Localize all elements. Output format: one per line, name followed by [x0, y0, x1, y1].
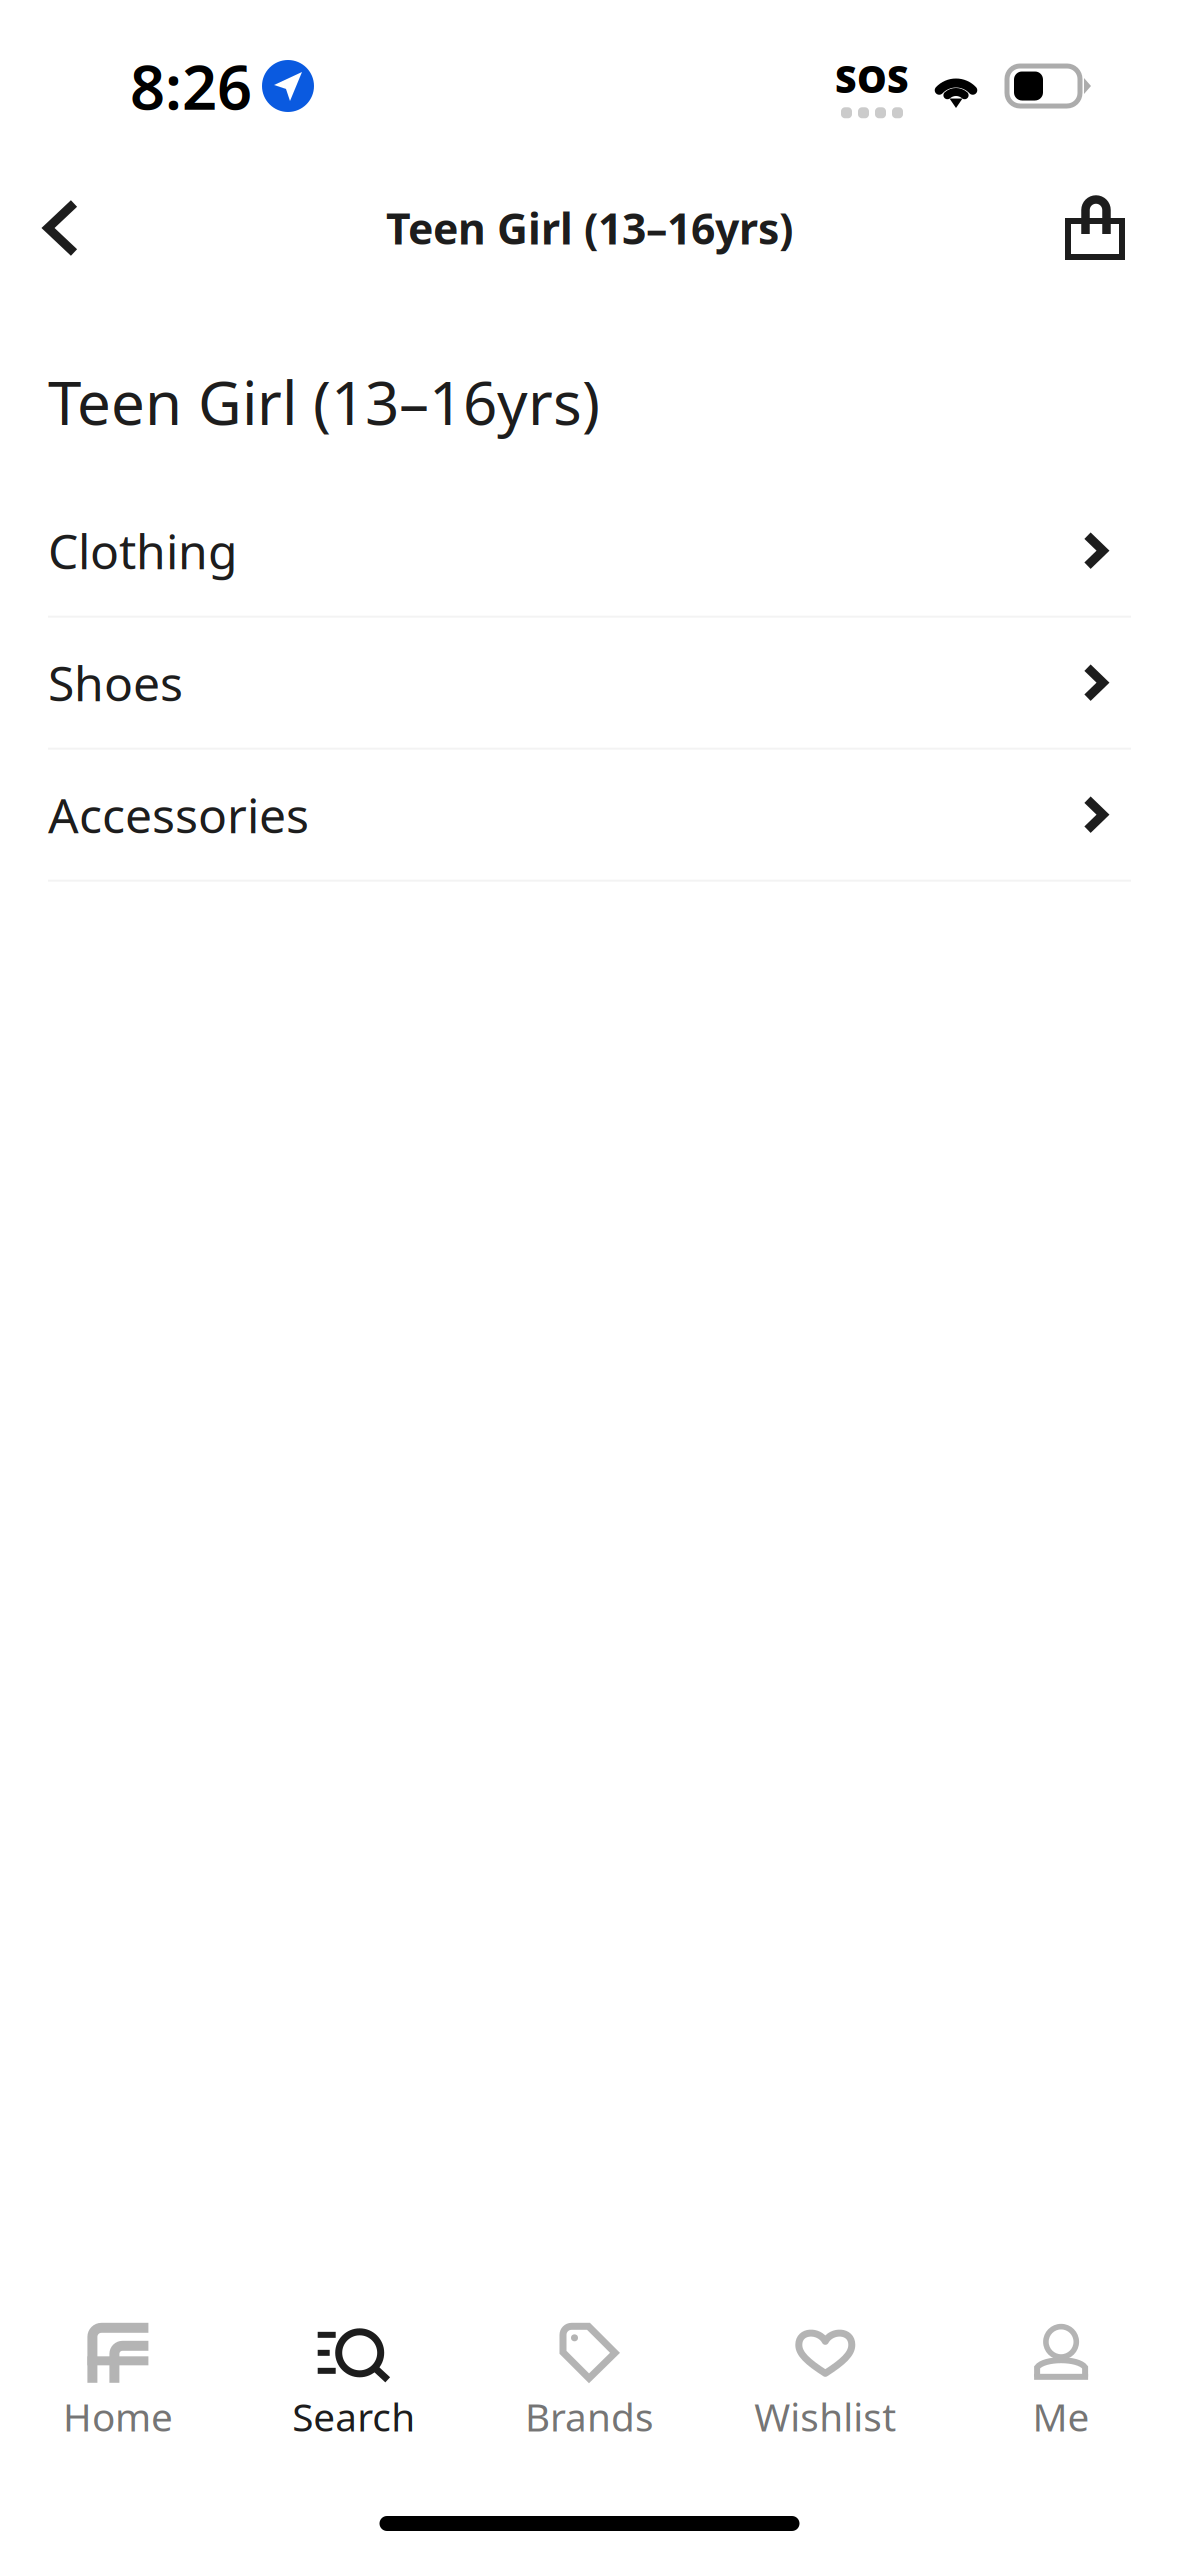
button[interactable]: Clothing — [0, 486, 1179, 618]
staticText: Teen Girl (13–16yrs) — [386, 200, 793, 256]
staticText: Accessories — [48, 783, 309, 846]
staticText: 8:26 — [130, 45, 252, 127]
button[interactable]: Accessories — [0, 750, 1179, 882]
staticText: Teen Girl (13–16yrs) — [48, 362, 600, 442]
staticText: Clothing — [48, 519, 238, 582]
staticText: Wishlist — [754, 2391, 896, 2442]
button[interactable]: Shopping bag — [1043, 176, 1147, 280]
button[interactable]: Shoes — [0, 618, 1179, 750]
staticText: Shoes — [48, 651, 183, 714]
staticText: Me — [1033, 2391, 1090, 2442]
staticText: Search — [292, 2391, 415, 2442]
button[interactable]: Me — [943, 2323, 1179, 2443]
button[interactable]: Back — [7, 176, 111, 280]
staticText: Home — [63, 2391, 173, 2442]
button[interactable]: Wishlist — [707, 2323, 943, 2443]
button[interactable]: Search — [236, 2323, 472, 2443]
button[interactable]: Home — [0, 2323, 236, 2443]
staticText: SOS — [835, 54, 909, 103]
staticText: Brands — [525, 2391, 654, 2442]
button[interactable]: Brands — [472, 2323, 707, 2443]
